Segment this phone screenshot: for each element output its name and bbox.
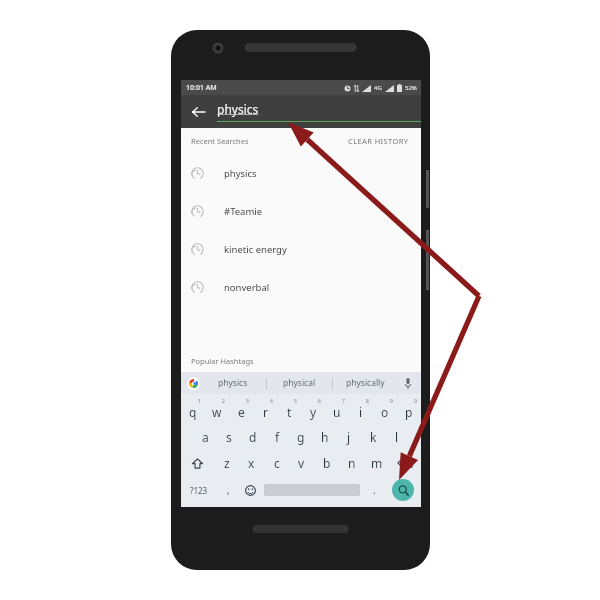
staticText: physical: [283, 377, 316, 389]
staticText: 2: [222, 398, 225, 405]
staticText: y: [310, 404, 317, 420]
staticText: 4: [270, 398, 273, 405]
staticText: physics: [218, 377, 248, 389]
button[interactable]: kinetic energy: [181, 230, 421, 268]
button[interactable]: Shift: [181, 450, 214, 476]
button[interactable]: physics: [181, 154, 421, 192]
staticText: nonverbal: [224, 281, 270, 294]
button[interactable]: c: [264, 450, 289, 476]
button[interactable]: f: [265, 424, 289, 450]
staticText: u: [333, 404, 341, 420]
staticText: Popular Hashtags: [191, 356, 254, 366]
button[interactable]: s: [217, 424, 241, 450]
button[interactable]: v: [289, 450, 314, 476]
button[interactable]: CLEAR HISTORY: [346, 134, 411, 148]
button[interactable]: Backspace: [389, 450, 421, 476]
staticText: x: [248, 455, 255, 471]
staticText: 4G: [374, 84, 382, 92]
button[interactable]: Search: [392, 479, 414, 501]
button[interactable]: physically: [333, 372, 398, 394]
staticText: 52%: [405, 84, 417, 92]
staticText: r: [263, 404, 268, 420]
staticText: q: [189, 404, 197, 420]
button[interactable]: physical: [267, 372, 332, 394]
button[interactable]: ?123: [181, 476, 217, 504]
button[interactable]: o: [373, 398, 397, 424]
button[interactable]: k: [361, 424, 385, 450]
staticText: k: [370, 429, 377, 445]
staticText: .: [373, 483, 376, 497]
button[interactable]: nonverbal: [181, 268, 421, 306]
staticText: e: [238, 404, 245, 420]
button[interactable]: t: [277, 398, 301, 424]
staticText: l: [395, 429, 399, 445]
staticText: 9: [390, 398, 393, 405]
button[interactable]: p: [397, 398, 421, 424]
button[interactable]: x: [239, 450, 264, 476]
button[interactable]: r: [253, 398, 277, 424]
staticText: g: [297, 429, 305, 445]
staticText: CLEAR HISTORY: [348, 136, 409, 146]
staticText: 8: [366, 398, 369, 405]
staticText: z: [224, 455, 230, 471]
staticText: 1: [198, 398, 201, 405]
button[interactable]: b: [314, 450, 339, 476]
staticText: t: [287, 404, 292, 420]
button[interactable]: g: [289, 424, 313, 450]
staticText: c: [274, 455, 280, 471]
staticText: m: [371, 455, 383, 471]
staticText: v: [298, 455, 305, 471]
staticText: j: [347, 429, 351, 445]
staticText: 7: [342, 398, 345, 405]
staticText: physically: [346, 377, 385, 389]
button[interactable]: y: [301, 398, 325, 424]
staticText: n: [348, 455, 356, 471]
staticText: 5: [294, 398, 297, 405]
button[interactable]: z: [214, 450, 239, 476]
staticText: 10:01 AM: [186, 83, 217, 93]
staticText: Recent Searches: [191, 136, 249, 146]
button[interactable]: i: [349, 398, 373, 424]
staticText: a: [202, 429, 209, 445]
staticText: w: [212, 404, 222, 420]
staticText: #Teamie: [224, 205, 263, 218]
staticText: physics: [224, 167, 257, 180]
button[interactable]: m: [364, 450, 389, 476]
button[interactable]: Back: [185, 99, 211, 125]
staticText: kinetic energy: [224, 243, 287, 256]
button[interactable]: Emoji: [239, 476, 261, 504]
staticText: o: [381, 404, 389, 420]
button[interactable]: #Teamie: [181, 192, 421, 230]
staticText: f: [275, 429, 280, 445]
staticText: s: [226, 429, 232, 445]
button[interactable]: q: [181, 398, 205, 424]
staticText: h: [321, 429, 329, 445]
staticText: i: [359, 404, 363, 420]
staticText: p: [405, 404, 413, 420]
button[interactable]: Voice input: [398, 372, 418, 394]
button[interactable]: e: [229, 398, 253, 424]
button[interactable]: Google: [187, 377, 200, 390]
button[interactable]: w: [205, 398, 229, 424]
staticText: d: [249, 429, 257, 445]
button[interactable]: physics: [217, 101, 430, 122]
button[interactable]: n: [339, 450, 364, 476]
button[interactable]: a: [193, 424, 217, 450]
staticText: ,: [227, 483, 230, 497]
staticText: 3: [246, 398, 249, 405]
staticText: 6: [318, 398, 321, 405]
button[interactable]: physics: [200, 372, 266, 394]
button[interactable]: d: [241, 424, 265, 450]
staticText: ?123: [190, 485, 208, 496]
button[interactable]: j: [337, 424, 361, 450]
staticText: b: [323, 455, 331, 471]
button[interactable]: ,: [217, 476, 239, 504]
staticText: physics: [217, 101, 259, 117]
button[interactable]: .: [363, 476, 385, 504]
button[interactable]: u: [325, 398, 349, 424]
staticText: 0: [414, 398, 417, 405]
button[interactable]: l: [385, 424, 409, 450]
button[interactable]: h: [313, 424, 337, 450]
